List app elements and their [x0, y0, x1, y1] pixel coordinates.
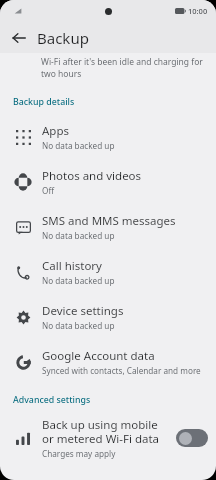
staticText: Device settings [42, 303, 124, 319]
staticText: 10:00 [188, 6, 208, 16]
button[interactable]: Device settings [0, 294, 216, 339]
staticText: Apps [42, 123, 70, 139]
staticText: Wi-Fi after it's been idle and charging … [41, 56, 203, 80]
button[interactable]: Call history [0, 249, 216, 294]
staticText: No data backed up [42, 320, 115, 331]
staticText: Off [42, 185, 55, 196]
button[interactable]: Google Account data [0, 339, 216, 384]
staticText: Advanced settings [13, 394, 91, 406]
button[interactable]: Back up using mobile or metered Wi-Fi da… [0, 410, 216, 466]
staticText: No data backed up [42, 230, 115, 241]
button[interactable]: Back [8, 27, 30, 49]
staticText: Synced with contacts, Calendar and more [42, 365, 201, 376]
staticText: No data backed up [42, 140, 115, 151]
staticText: Charges may apply [42, 448, 116, 459]
button[interactable]: Apps [0, 114, 216, 159]
staticText: Backup [37, 28, 89, 48]
staticText: Google Account data [42, 348, 155, 364]
staticText: Back up using mobile or metered Wi-Fi da… [42, 417, 160, 447]
staticText: Photos and videos [42, 168, 142, 184]
staticText: No data backed up [42, 275, 115, 286]
staticText: Call history [42, 258, 102, 274]
button[interactable]: Back up using mobile or metered Wi-Fi da… [176, 429, 208, 447]
button[interactable]: Photos and videos [0, 159, 216, 204]
staticText: SMS and MMS messages [42, 213, 176, 229]
staticText: Backup details [13, 96, 75, 108]
button[interactable]: SMS and MMS messages [0, 204, 216, 249]
